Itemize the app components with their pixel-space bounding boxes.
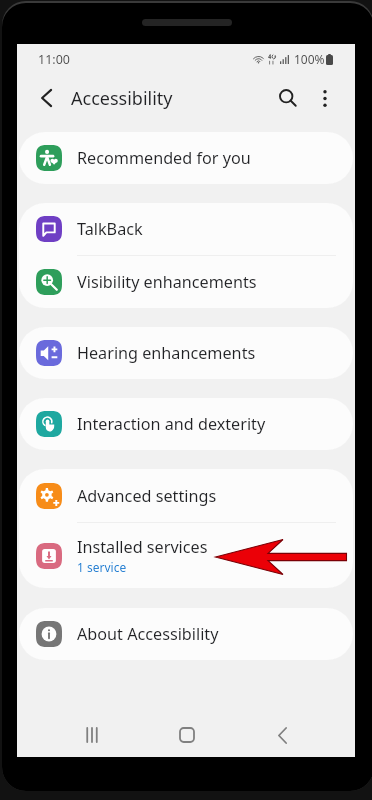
staticText: 11:00 bbox=[38, 51, 70, 68]
button[interactable]: Navigate up bbox=[31, 83, 61, 113]
staticText: Visibility enhancements bbox=[77, 271, 257, 293]
button[interactable]: Recommended for you bbox=[19, 132, 353, 184]
button[interactable]: Recent apps bbox=[74, 717, 110, 753]
button[interactable]: More options bbox=[309, 82, 341, 114]
staticText: Advanced settings bbox=[77, 485, 217, 507]
staticText: Accessibility bbox=[71, 86, 173, 111]
staticText: 100% bbox=[294, 51, 325, 67]
staticText: TalkBack bbox=[77, 218, 143, 240]
staticText: Hearing enhancements bbox=[77, 342, 256, 364]
button[interactable]: Hearing enhancements bbox=[19, 327, 353, 379]
button[interactable]: Advanced settings bbox=[19, 469, 353, 522]
staticText: Interaction and dexterity bbox=[77, 413, 266, 435]
staticText: Recommended for you bbox=[77, 147, 251, 169]
button[interactable]: Visibility enhancements bbox=[19, 256, 353, 308]
button[interactable]: TalkBack bbox=[19, 203, 353, 255]
button[interactable]: Search bbox=[272, 82, 304, 114]
button[interactable]: Home bbox=[169, 717, 205, 753]
staticText: Installed services bbox=[77, 536, 208, 558]
button[interactable]: Interaction and dexterity bbox=[19, 398, 353, 450]
button[interactable]: Back bbox=[264, 717, 300, 753]
staticText: 1 service bbox=[77, 559, 127, 575]
button[interactable]: About Accessibility bbox=[19, 608, 353, 660]
staticText: About Accessibility bbox=[77, 623, 219, 645]
button[interactable]: Installed services bbox=[19, 523, 353, 588]
